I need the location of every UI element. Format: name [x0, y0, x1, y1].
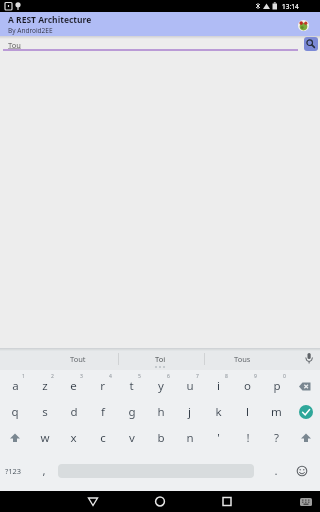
staticText: n — [186, 430, 194, 446]
button[interactable] — [291, 399, 320, 425]
button[interactable]: u — [175, 373, 204, 399]
staticText: 1 — [22, 373, 25, 380]
button[interactable] — [216, 491, 238, 512]
button[interactable]: b — [146, 425, 175, 451]
button[interactable] — [0, 425, 30, 451]
button[interactable]: i — [204, 373, 233, 399]
button[interactable]: e — [59, 373, 88, 399]
staticText: 3 — [80, 373, 83, 380]
staticText: u — [186, 378, 194, 394]
button[interactable] — [82, 491, 104, 512]
staticText: i — [217, 378, 220, 394]
staticText: Tout — [70, 354, 86, 364]
button[interactable]: ' — [204, 425, 233, 451]
staticText: v — [129, 430, 135, 446]
staticText: l — [246, 404, 249, 420]
button[interactable]: r — [88, 373, 117, 399]
staticText: . — [274, 463, 278, 479]
button[interactable]: x — [59, 425, 88, 451]
staticText: 9 — [254, 373, 257, 380]
button[interactable]: t — [117, 373, 146, 399]
button[interactable]: o — [233, 373, 262, 399]
staticText: a — [12, 378, 19, 394]
staticText: Tou — [8, 40, 21, 50]
staticText: By Android2EE — [8, 26, 53, 35]
staticText: h — [157, 404, 165, 420]
button[interactable]: m — [262, 399, 291, 425]
staticText: A REST Architecture — [8, 14, 92, 26]
staticText: j — [188, 404, 191, 420]
staticText: ? — [274, 430, 279, 446]
staticText: e — [70, 378, 77, 394]
button[interactable]: y — [146, 373, 175, 399]
button[interactable]: h — [146, 399, 175, 425]
staticText: x — [70, 430, 77, 446]
staticText: Tous — [234, 354, 251, 364]
staticText: 13:14 — [282, 2, 299, 11]
button[interactable]: j — [175, 399, 204, 425]
staticText: , — [42, 463, 46, 479]
button[interactable]: g — [117, 399, 146, 425]
button[interactable] — [304, 37, 318, 51]
button[interactable] — [291, 425, 320, 451]
staticText: 7 — [196, 373, 199, 380]
button[interactable]: f — [88, 399, 117, 425]
staticText: ! — [246, 430, 250, 446]
staticText: o — [244, 378, 251, 394]
button[interactable]: a — [0, 373, 30, 399]
button[interactable] — [296, 465, 308, 477]
button[interactable]: s — [30, 399, 59, 425]
button[interactable]: ! — [233, 425, 262, 451]
staticText: q — [11, 404, 19, 420]
staticText: 4 — [109, 373, 112, 380]
button[interactable]: p — [262, 373, 291, 399]
staticText: z — [42, 378, 48, 394]
button[interactable]: k — [204, 399, 233, 425]
staticText: f — [101, 404, 105, 420]
button[interactable]: n — [175, 425, 204, 451]
staticText: g — [128, 404, 136, 420]
button[interactable]: Tous — [207, 348, 277, 370]
staticText: 2 — [51, 373, 54, 380]
button[interactable] — [291, 373, 320, 399]
button[interactable]: v — [117, 425, 146, 451]
staticText: 6 — [167, 373, 170, 380]
staticText: m — [271, 404, 282, 420]
staticText: ' — [217, 430, 220, 446]
button[interactable] — [298, 20, 309, 31]
staticText: 0 — [283, 373, 286, 380]
staticText: p — [273, 378, 281, 394]
button[interactable]: Toi — [125, 348, 195, 370]
staticText: r — [100, 378, 105, 394]
button[interactable] — [149, 491, 171, 512]
staticText: c — [100, 430, 106, 446]
staticText: Toi — [155, 354, 166, 364]
staticText: k — [215, 404, 222, 420]
button[interactable]: ?123 — [5, 466, 22, 476]
button[interactable]: Tout — [43, 348, 113, 370]
staticText: w — [40, 430, 50, 446]
staticText: 5 — [138, 373, 141, 380]
staticText: d — [70, 404, 78, 420]
staticText: 8 — [225, 373, 228, 380]
button[interactable]: l — [233, 399, 262, 425]
staticText: t — [129, 378, 134, 394]
button[interactable]: q — [0, 399, 30, 425]
staticText: s — [42, 404, 48, 420]
staticText: y — [158, 378, 164, 394]
button[interactable]: z — [30, 373, 59, 399]
button[interactable]: d — [59, 399, 88, 425]
button[interactable]: ? — [262, 425, 291, 451]
button[interactable]: c — [88, 425, 117, 451]
staticText: b — [157, 430, 165, 446]
button[interactable]: w — [30, 425, 59, 451]
